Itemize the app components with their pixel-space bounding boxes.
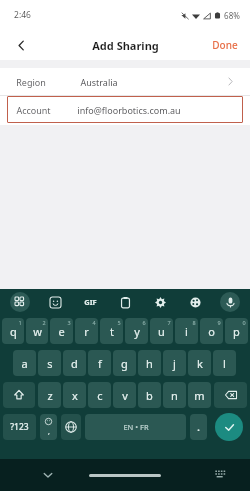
button[interactable]: Voice input [220,292,240,312]
button[interactable]: b [138,382,161,408]
staticText: x [72,388,78,403]
button[interactable]: GIF [80,292,100,312]
staticText: . [197,421,200,433]
button[interactable]: q [2,318,24,344]
staticText: j [173,356,176,371]
button[interactable]: Done [206,34,244,56]
button[interactable]: Switch keyboard [210,465,230,485]
staticText: 1 [18,319,22,326]
staticText: c [97,388,103,403]
staticText: GIF [84,297,97,307]
staticText: 0 [242,319,246,326]
staticText: e [58,324,65,339]
staticText: m [194,388,205,403]
button[interactable]: g [113,350,136,376]
button[interactable]: m [188,382,211,408]
staticText: r [84,324,89,339]
button[interactable]: Account [7,96,243,123]
button[interactable]: Change language [61,414,81,440]
staticText: b [146,388,153,403]
button[interactable]: v [113,382,136,408]
button[interactable]: z [38,382,61,408]
staticText: 7 [167,319,171,326]
staticText: s [47,356,53,371]
button[interactable]: Shift [3,382,35,408]
button[interactable]: a [13,350,36,376]
staticText: 5 [117,319,121,326]
button[interactable]: EN • FR [85,414,186,440]
button[interactable]: k [188,350,211,376]
staticText: k [197,356,203,371]
button[interactable]: Clipboard [115,292,135,312]
staticText: 2 [42,319,46,326]
button[interactable]: y [125,318,148,344]
staticText: t [110,324,114,339]
staticText: , [48,427,50,437]
staticText: Account [16,104,51,116]
staticText: g [121,356,128,371]
button[interactable]: Back [8,32,34,58]
button[interactable]: d [63,350,86,376]
button[interactable]: s [38,350,61,376]
button[interactable]: Enter [215,413,243,441]
button[interactable]: Backspace [214,382,247,408]
staticText: u [158,324,165,339]
button[interactable]: ?123 [3,414,36,440]
button[interactable]: t [100,318,123,344]
button[interactable]: Emoji and comma [40,414,57,440]
staticText: q [10,324,17,339]
button[interactable]: j [163,350,186,376]
staticText: y [134,324,140,339]
button[interactable]: u [150,318,173,344]
staticText: ?123 [10,421,29,433]
staticText: info@floorbotics.com.au [77,104,181,116]
staticText: EN • FR [123,422,149,432]
button[interactable]: x [63,382,86,408]
staticText: 2:46 [14,9,31,21]
button[interactable]: h [138,350,161,376]
button[interactable]: Hide keyboard [38,465,58,485]
staticText: p [233,324,240,339]
staticText: Add Sharing [92,38,159,53]
button[interactable]: w [26,318,48,344]
staticText: a [21,356,28,371]
staticText: Done [212,38,238,52]
staticText: f [98,356,102,371]
staticText: z [47,388,53,403]
button[interactable]: Settings [150,292,170,312]
staticText: h [146,356,153,371]
button[interactable]: Keyboard switcher [10,292,30,312]
button[interactable]: c [88,382,111,408]
staticText: 6 [142,319,146,326]
staticText: Region [16,76,46,88]
staticText: l [223,356,226,371]
staticText: 8 [192,319,196,326]
staticText: 3 [67,319,71,326]
button[interactable]: r [75,318,98,344]
staticText: 9 [217,319,221,326]
staticText: v [122,388,128,403]
staticText: Australia [80,76,118,88]
staticText: w [33,324,42,339]
staticText: o [208,324,215,339]
staticText: n [171,388,178,403]
staticText: i [185,324,188,339]
button[interactable]: . [190,414,207,440]
button[interactable]: e [50,318,73,344]
button[interactable]: n [163,382,186,408]
button[interactable]: l [213,350,236,376]
button[interactable]: f [88,350,111,376]
button[interactable]: Themes [185,292,205,312]
button[interactable]: Stickers [45,292,65,312]
button[interactable]: i [175,318,198,344]
staticText: d [71,356,78,371]
button[interactable]: p [225,318,248,344]
staticText: 68% [224,10,240,21]
button[interactable]: Region [0,68,250,95]
staticText: 4 [92,319,96,326]
button[interactable]: o [200,318,223,344]
